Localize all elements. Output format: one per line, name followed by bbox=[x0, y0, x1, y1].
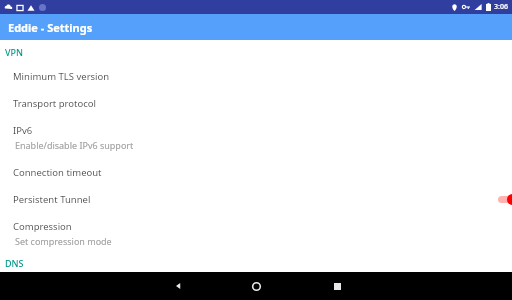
staticText: Persistent Tunnel bbox=[13, 193, 492, 206]
button[interactable]: Persistent Tunnel bbox=[0, 186, 512, 213]
staticText: Connection timeout bbox=[13, 166, 102, 179]
button[interactable]: Recent apps bbox=[325, 274, 349, 298]
button[interactable]: Compression bbox=[0, 213, 512, 254]
staticText: IPv6 bbox=[13, 124, 33, 137]
staticText: DNS bbox=[5, 257, 24, 269]
staticText: 3:06 bbox=[494, 2, 508, 12]
button[interactable]: Transport protocol bbox=[0, 90, 512, 117]
button[interactable]: Minimum TLS version bbox=[0, 63, 512, 90]
staticText: Enable/disable IPv6 support bbox=[15, 139, 134, 151]
button[interactable]: Connection timeout bbox=[0, 158, 512, 186]
staticText: Compression bbox=[13, 220, 72, 233]
staticText: Minimum TLS version bbox=[13, 70, 110, 83]
staticText: Transport protocol bbox=[13, 97, 96, 110]
staticText: Eddie - Settings bbox=[8, 20, 93, 35]
button[interactable]: Back bbox=[166, 274, 190, 298]
button[interactable]: IPv6 bbox=[0, 117, 512, 158]
staticText: Set compression mode bbox=[15, 235, 112, 247]
button[interactable]: Home bbox=[244, 274, 268, 298]
other: Persistent Tunnel toggle bbox=[498, 194, 512, 205]
staticText: VPN bbox=[5, 46, 24, 58]
